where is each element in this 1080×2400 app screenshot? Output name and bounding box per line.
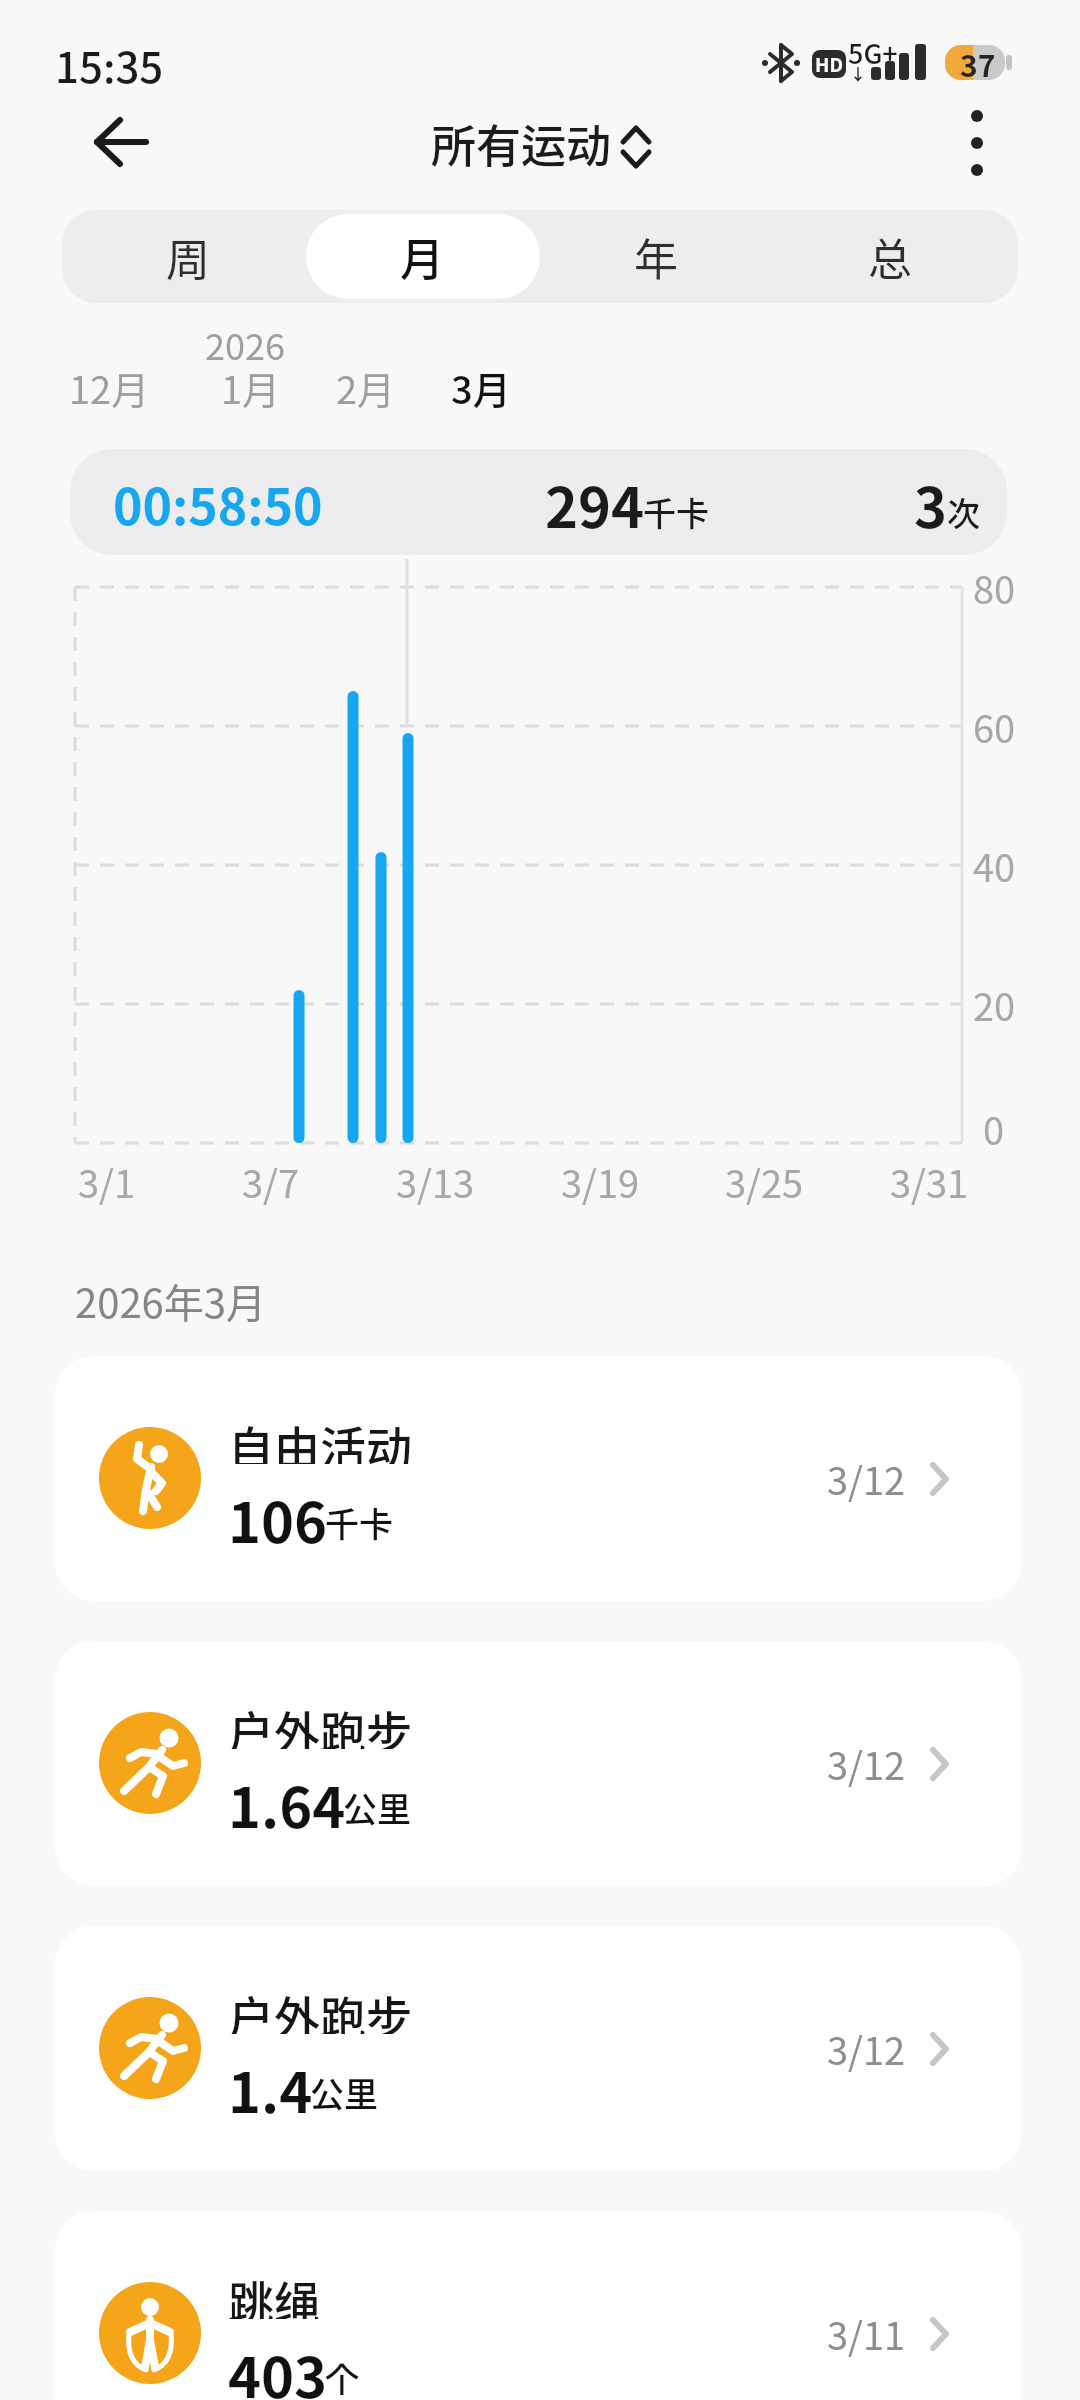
staticText: 公里: [310, 2068, 378, 2117]
staticText: 月: [400, 225, 444, 289]
staticText: 3: [914, 463, 948, 544]
button[interactable]: 周: [71, 210, 305, 303]
staticText: 20: [973, 977, 1016, 1032]
staticText: 3/13: [396, 1154, 475, 1209]
staticText: 3/12: [827, 1451, 906, 1506]
button[interactable]: 1月: [191, 353, 311, 421]
staticText: HD: [815, 50, 843, 78]
staticText: 40: [973, 838, 1016, 893]
staticText: 公里: [343, 1783, 411, 1832]
button[interactable]: 自由活动: [55, 1356, 1022, 1601]
staticText: 1月: [221, 360, 281, 415]
button[interactable]: 月: [305, 210, 539, 303]
staticText: 自由活动: [228, 1412, 412, 1464]
staticText: 跳绳: [228, 2267, 320, 2319]
staticText: 15:35: [55, 34, 164, 95]
staticText: ↓: [850, 61, 867, 84]
staticText: 户外跑步: [228, 1697, 412, 1749]
staticText: 千卡: [325, 1498, 393, 1547]
staticText: 80: [973, 560, 1016, 615]
staticText: 12月: [69, 360, 150, 415]
staticText: 37: [960, 42, 996, 85]
staticText: 2026: [205, 318, 285, 370]
staticText: 106: [228, 1478, 328, 1546]
staticText: 3/19: [561, 1154, 640, 1209]
staticText: 0: [983, 1101, 1005, 1156]
staticText: 3/11: [827, 2306, 906, 2361]
button[interactable]: 年: [539, 210, 773, 303]
staticText: 403: [228, 2333, 328, 2400]
button[interactable]: [400, 110, 680, 176]
button[interactable]: [70, 112, 170, 172]
staticText: 1.64: [228, 1763, 346, 1831]
staticText: 户外跑步: [228, 1982, 412, 2034]
button[interactable]: 2月: [306, 353, 426, 421]
staticText: 所有运动: [431, 111, 612, 176]
staticText: 2月: [336, 360, 396, 415]
staticText: 3/12: [827, 2021, 906, 2076]
staticText: 千卡: [643, 488, 709, 536]
staticText: 00:58:50: [113, 467, 323, 539]
staticText: 3/1: [78, 1154, 136, 1209]
button[interactable]: 12月: [49, 353, 169, 421]
staticText: 3月: [451, 360, 511, 415]
staticText: 3/25: [725, 1154, 804, 1209]
staticText: 294: [545, 463, 645, 544]
button[interactable]: 户外跑步: [55, 1926, 1022, 2171]
button[interactable]: 总: [773, 210, 1007, 303]
staticText: 3/31: [890, 1154, 969, 1209]
staticText: 年: [634, 225, 678, 289]
staticText: 周: [166, 225, 210, 289]
button[interactable]: [70, 449, 1007, 555]
staticText: 60: [973, 699, 1016, 754]
button[interactable]: [945, 105, 1009, 181]
staticText: 1.4: [228, 2048, 313, 2116]
button[interactable]: 跳绳: [55, 2211, 1022, 2400]
staticText: 总: [868, 225, 912, 289]
staticText: 5G+: [848, 33, 898, 72]
staticText: 3/7: [242, 1154, 300, 1209]
button[interactable]: 3月: [421, 353, 541, 421]
staticText: 次: [947, 488, 980, 536]
button[interactable]: 户外跑步: [55, 1641, 1022, 1886]
staticText: 3/12: [827, 1736, 906, 1791]
staticText: 个: [325, 2353, 359, 2400]
staticText: 2026年3月: [75, 1272, 266, 1330]
